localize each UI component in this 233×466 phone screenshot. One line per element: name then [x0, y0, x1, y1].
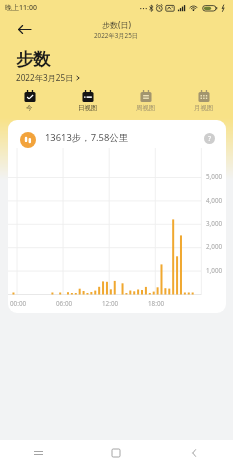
button[interactable]: 月视图 [175, 86, 233, 114]
button[interactable]: Back [12, 17, 36, 41]
button[interactable]: 周视图 [117, 86, 175, 114]
staticText: 00:00 [10, 299, 27, 308]
staticText: 步数(日) [102, 19, 131, 30]
staticText: ? [208, 134, 212, 144]
button[interactable]: 2022年3月25日 [16, 72, 80, 83]
staticText: 18:00 [148, 299, 165, 308]
button[interactable]: Back [155, 440, 233, 466]
staticText: 月视图 [194, 104, 214, 112]
staticText: 3,000 [206, 219, 223, 228]
staticText: 2,000 [206, 242, 223, 251]
staticText: 12:00 [102, 299, 119, 308]
staticText: 2022年3月25日 [94, 31, 139, 40]
staticText: 日视图 [78, 104, 98, 112]
staticText: 周视图 [136, 104, 156, 112]
button[interactable]: Home [77, 440, 155, 466]
staticText: 4,000 [206, 196, 223, 205]
staticText: 今 [26, 104, 33, 112]
staticText: 5,000 [206, 172, 223, 181]
staticText: 13613步，7.58公里 [45, 131, 129, 144]
button[interactable]: Info [204, 133, 215, 144]
staticText: 06:00 [56, 299, 73, 308]
staticText: 步数 [16, 48, 51, 70]
staticText: 1,000 [206, 266, 223, 275]
staticText: 晚上11:00 [5, 3, 37, 13]
staticText: 2022年3月25日 [16, 72, 74, 83]
button[interactable]: 今 [0, 86, 59, 114]
button[interactable]: 日视图 [59, 86, 117, 114]
button[interactable]: Recents [0, 440, 77, 466]
